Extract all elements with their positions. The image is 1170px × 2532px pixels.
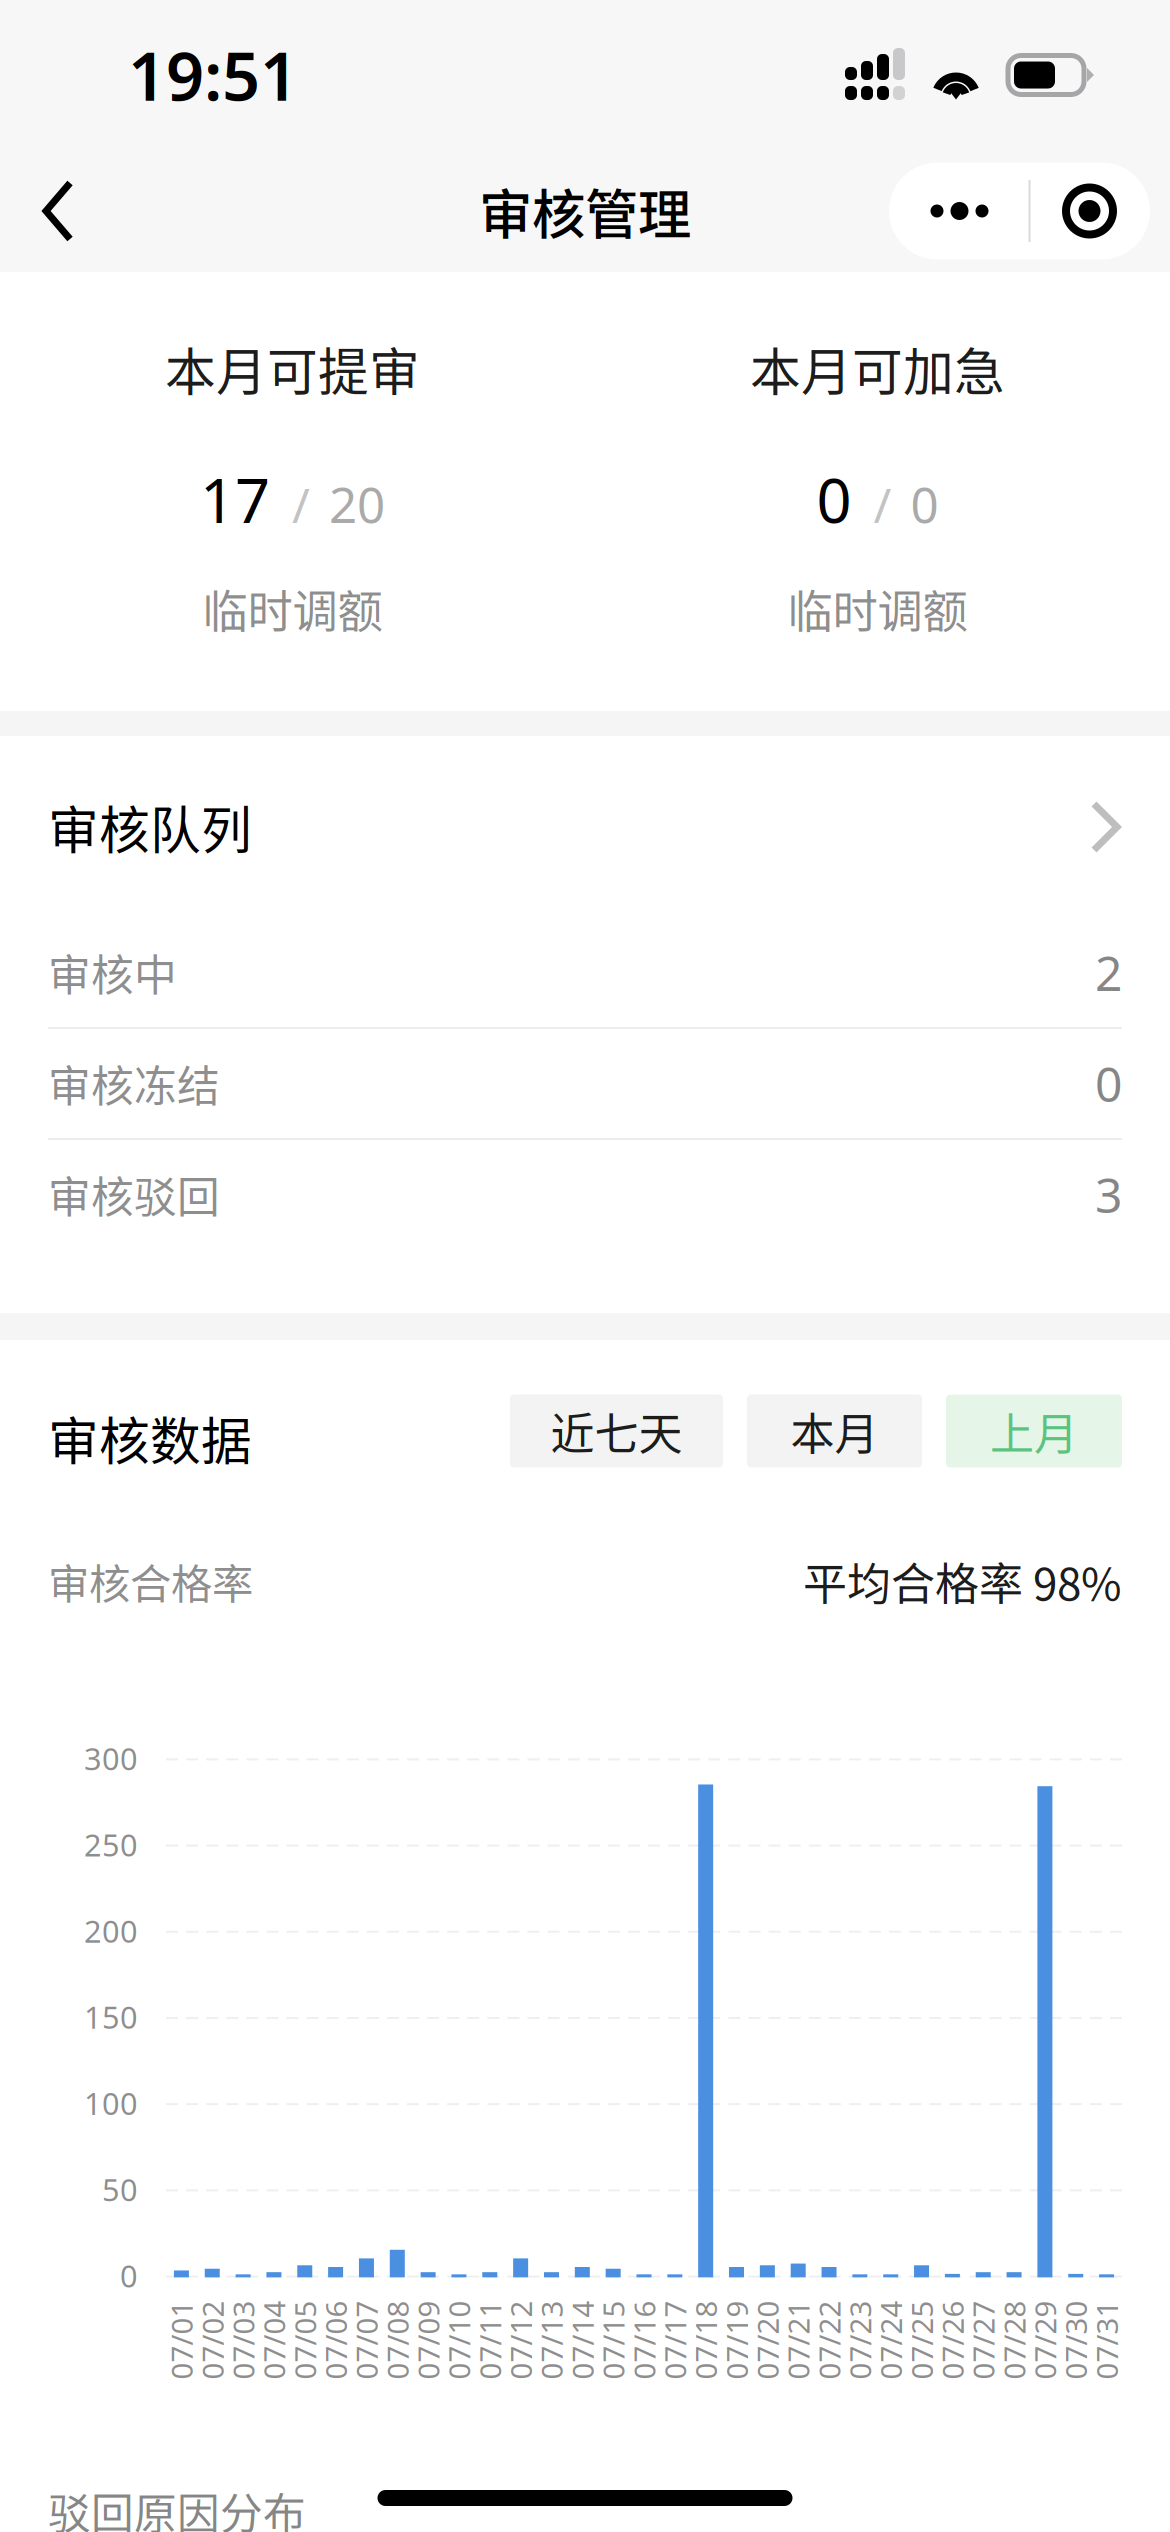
staticText: 07/07	[351, 2344, 430, 2383]
staticText: 审核数据	[48, 1401, 252, 1475]
button[interactable]: 临时调额	[763, 562, 991, 655]
staticText: 审核队列	[48, 790, 252, 864]
staticText: 100	[84, 2083, 138, 2123]
staticText: 0	[1095, 1052, 1122, 1115]
staticText: 50	[102, 2169, 138, 2210]
staticText: 07/16	[629, 2344, 708, 2383]
staticText: 07/20	[752, 2344, 831, 2383]
staticText: 07/06	[320, 2344, 399, 2383]
button[interactable]: 审核中	[48, 918, 1122, 1029]
staticText: 07/15	[598, 2344, 677, 2383]
staticText: 07/26	[937, 2344, 1016, 2383]
staticText: 07/02	[197, 2344, 276, 2383]
staticText: 07/01	[166, 2344, 245, 2383]
staticText: 07/11	[474, 2344, 553, 2383]
staticText: 07/27	[968, 2344, 1047, 2383]
staticText: 审核合格率	[48, 1551, 253, 1611]
staticText: /	[873, 472, 891, 536]
staticText: 近七天	[550, 1399, 682, 1463]
staticText: /	[292, 472, 310, 536]
staticText: 本月	[790, 1399, 878, 1463]
staticText: 150	[84, 1997, 138, 2037]
button[interactable]: 审核队列	[48, 736, 1122, 918]
button[interactable]: Back	[0, 150, 116, 272]
button[interactable]: More options	[889, 162, 1150, 259]
staticText: 07/09	[413, 2344, 492, 2383]
staticText: 07/08	[382, 2344, 461, 2383]
staticText: 07/19	[721, 2344, 800, 2383]
staticText: 本月可加急	[750, 332, 1005, 405]
button[interactable]: 审核冻结	[48, 1029, 1122, 1140]
staticText: 07/31	[1091, 2344, 1170, 2383]
button[interactable]: 上月	[946, 1394, 1122, 1467]
staticText: 临时调额	[202, 576, 382, 641]
button[interactable]: 临时调额	[178, 562, 406, 655]
staticText: 平均合格率 98%	[803, 1549, 1122, 1613]
staticText: 07/29	[1029, 2344, 1108, 2383]
staticText: 19:51	[128, 31, 298, 119]
staticText: 07/12	[505, 2344, 584, 2383]
staticText: 审核中	[48, 942, 177, 1003]
staticText: 07/18	[690, 2344, 769, 2383]
staticText: 07/23	[844, 2344, 923, 2383]
staticText: 07/13	[536, 2344, 615, 2383]
staticText: 审核冻结	[48, 1053, 220, 1114]
staticText: 07/05	[289, 2344, 368, 2383]
staticText: 07/17	[659, 2344, 738, 2383]
staticText: 07/10	[443, 2344, 522, 2383]
staticText: 3	[1095, 1163, 1122, 1226]
staticText: 07/28	[999, 2344, 1078, 2383]
staticText: 0	[910, 471, 938, 536]
staticText: 07/03	[228, 2344, 307, 2383]
button[interactable]: 本月	[747, 1394, 922, 1467]
staticText: 审核驳回	[48, 1164, 220, 1225]
button[interactable]: 审核驳回	[48, 1140, 1122, 1249]
staticText: 07/14	[567, 2344, 646, 2383]
staticText: 07/30	[1060, 2344, 1139, 2383]
staticText: 审核管理	[479, 172, 691, 250]
staticText: 17	[200, 458, 270, 540]
staticText: 20	[329, 471, 385, 536]
staticText: 0	[120, 2255, 138, 2296]
staticText: 上月	[990, 1399, 1078, 1463]
staticText: 250	[84, 1824, 138, 1865]
staticText: 300	[84, 1738, 138, 1779]
staticText: 驳回原因分布	[48, 2480, 306, 2532]
staticText: 本月可提审	[165, 332, 420, 405]
staticText: 07/24	[875, 2344, 954, 2383]
staticText: 07/04	[258, 2344, 337, 2383]
staticText: 07/25	[906, 2344, 985, 2383]
button[interactable]: 近七天	[510, 1394, 723, 1467]
staticText: 2	[1095, 941, 1122, 1004]
staticText: 200	[84, 1910, 138, 1951]
staticText: 07/22	[814, 2344, 893, 2383]
staticText: 临时调额	[787, 576, 967, 641]
staticText: 0	[816, 458, 851, 540]
staticText: 07/21	[783, 2344, 862, 2383]
